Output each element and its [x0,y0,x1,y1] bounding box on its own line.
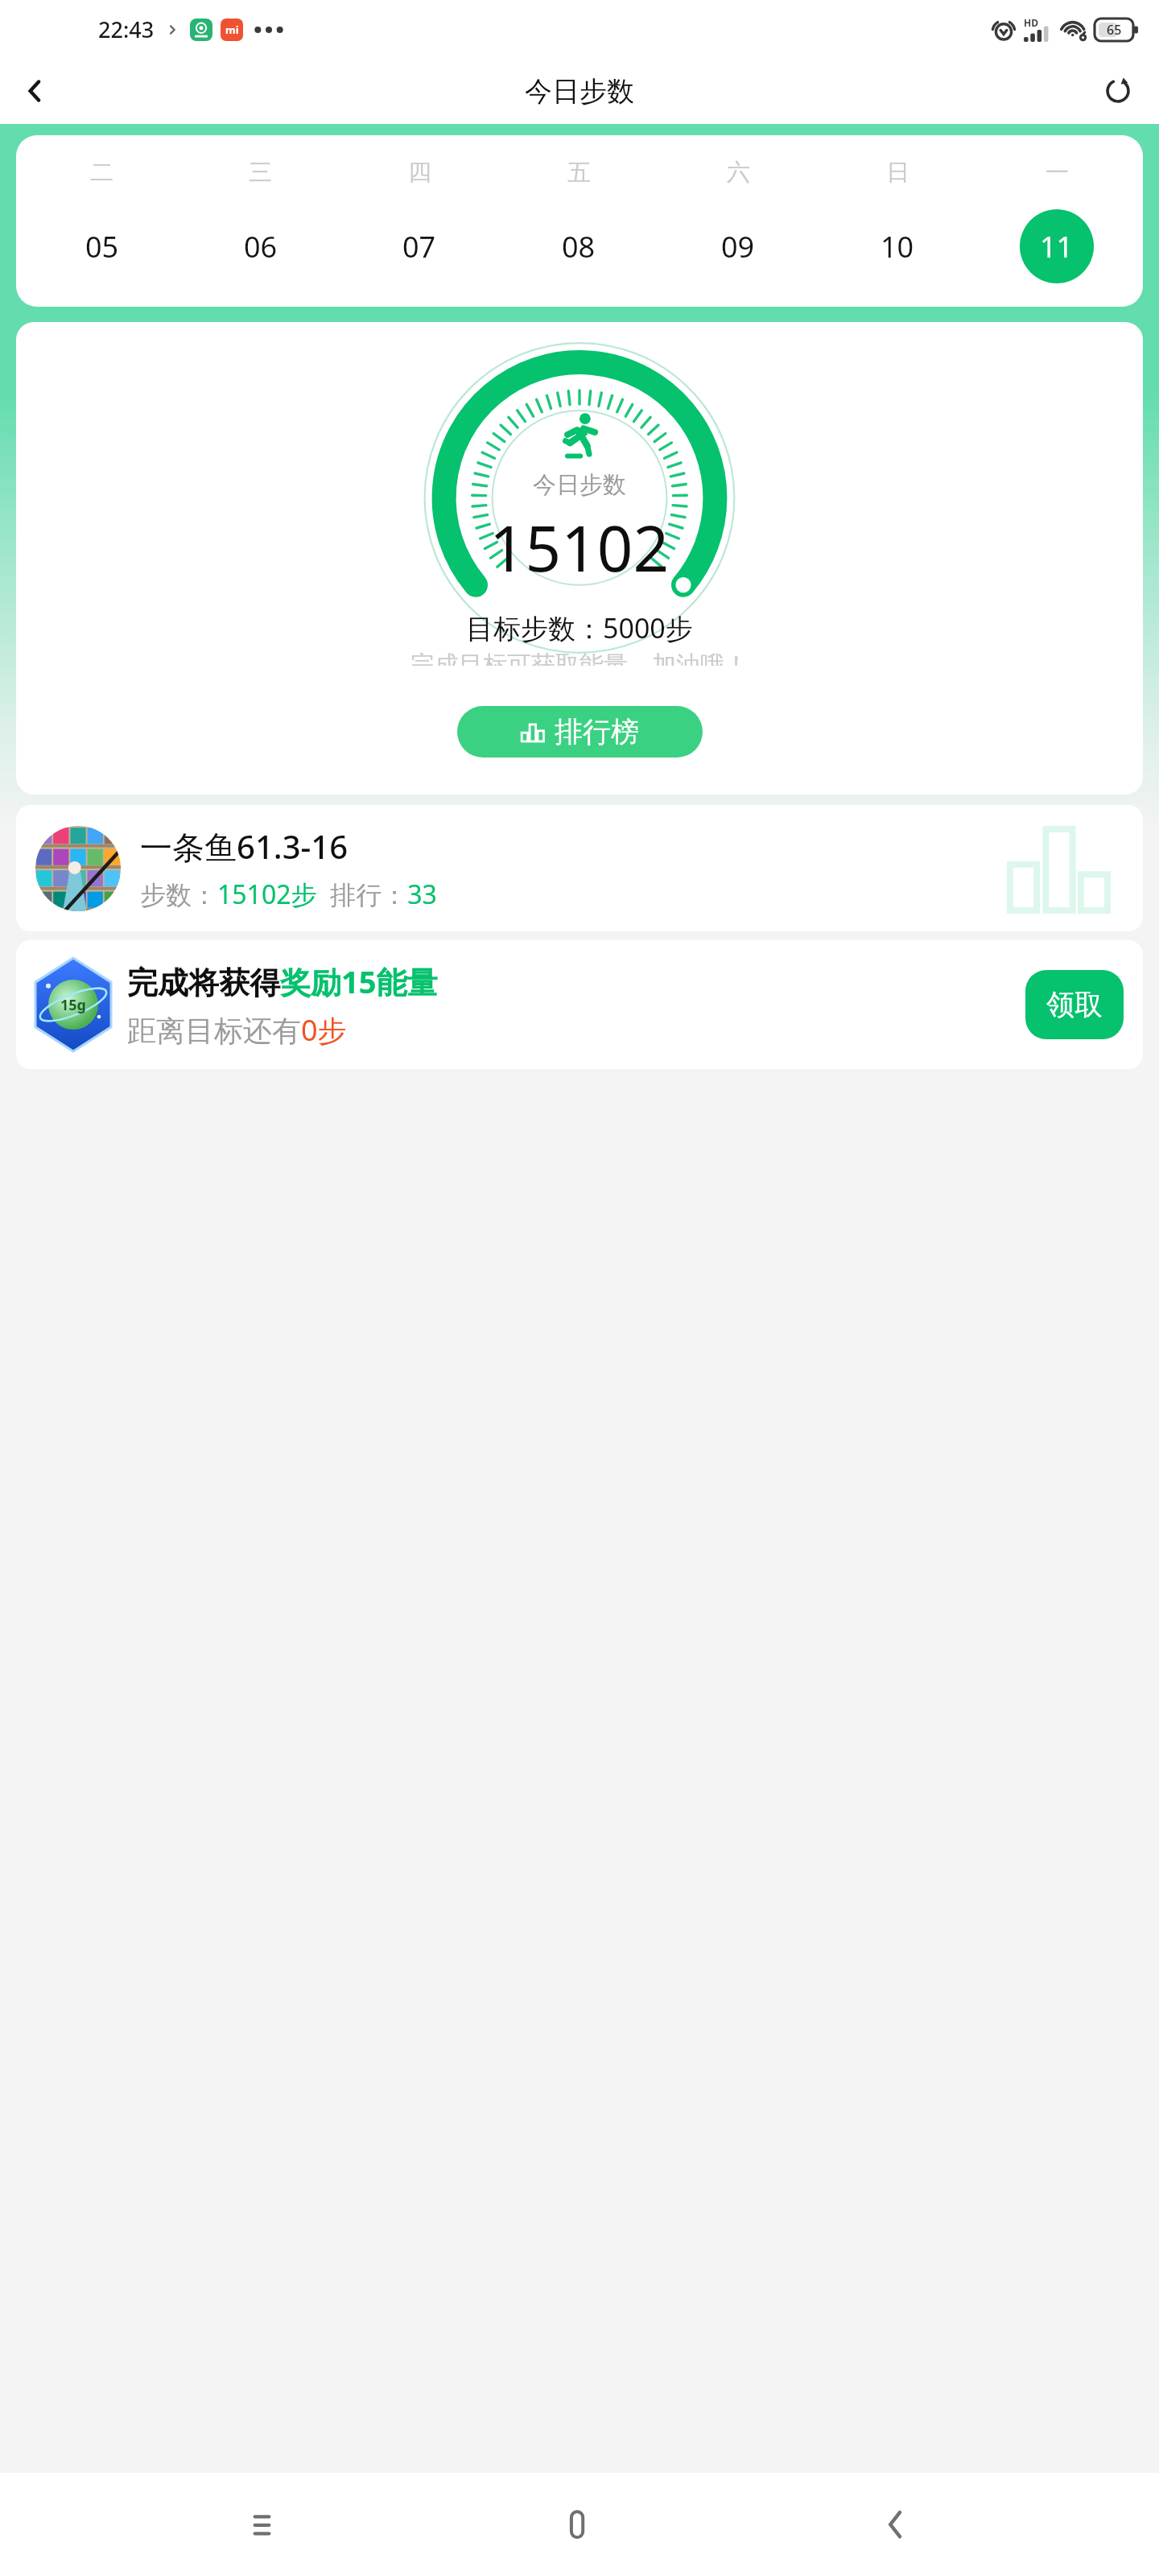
button[interactable]: 08 [499,208,658,284]
staticText: 一条鱼61.3-16 [140,824,349,869]
button[interactable]: 返回 [8,64,61,118]
staticText: 65 [1107,21,1122,39]
staticText: 今日步数 [533,470,626,500]
staticText: 一 [1046,158,1069,188]
staticText: 06 [244,227,278,266]
button[interactable]: 排行榜 [457,706,703,758]
staticText: 10 [881,227,914,266]
staticText: 目标步数：5000步 [466,609,693,646]
button[interactable]: 领取 [1025,970,1124,1039]
staticText: 步数：15102步 排行：33 [140,877,437,912]
staticText: 领取 [1046,987,1103,1022]
button[interactable]: 09 [658,208,818,284]
button[interactable]: 返回 [843,2473,948,2576]
button[interactable]: 05 [23,208,181,284]
button[interactable]: 主页 [527,2473,632,2576]
button[interactable]: 06 [181,208,340,284]
staticText: 15102 [489,505,670,590]
staticText: HD [1024,16,1038,29]
staticText: 07 [402,227,436,266]
staticText: 今日步数 [525,74,634,109]
staticText: 五 [567,158,591,188]
button[interactable]: 最近任务 [212,2473,316,2576]
staticText: 日 [886,158,909,188]
button[interactable]: 刷新 [1091,64,1145,118]
staticText: 22:43 [98,14,155,44]
staticText: 六 [727,158,750,188]
staticText: 四 [408,158,431,188]
staticText: 08 [562,227,596,266]
staticText: 三 [249,158,272,188]
staticText: 排行榜 [555,714,639,749]
staticText: 09 [721,227,755,266]
staticText: 完成将获得奖励15能量 [127,960,438,1002]
staticText: 二 [90,158,113,188]
staticText: 15g [60,995,86,1015]
staticText: 完成目标可获取能量，加油哦！ [410,650,749,666]
staticText: 11 [1040,227,1074,266]
button[interactable]: 07 [340,208,499,284]
button[interactable]: 10 [818,208,977,284]
staticText: 05 [85,227,119,266]
staticText: 距离目标还有0步 [127,1010,347,1050]
button[interactable]: 一条鱼61.3-16 [16,805,1143,931]
button[interactable]: 11 [977,208,1136,284]
staticText: mi [225,23,239,37]
